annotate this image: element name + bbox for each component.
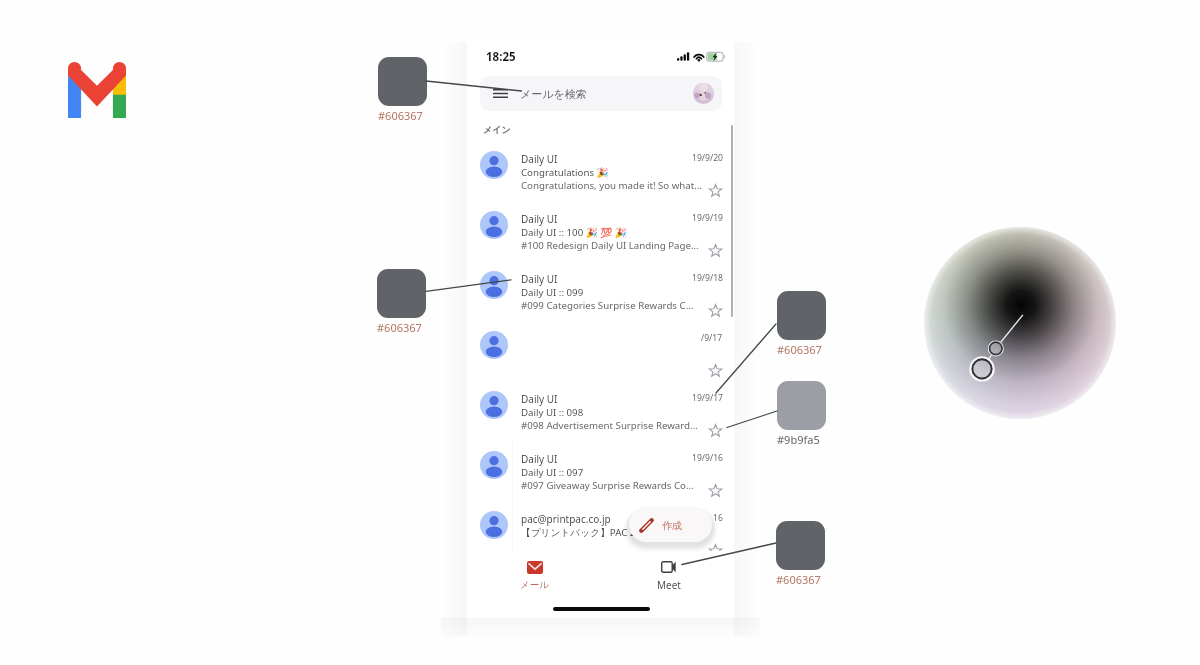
- staticText: #099 Categories Surprise Rewards C...: [521, 299, 694, 312]
- button[interactable]: Star: [709, 364, 722, 377]
- button[interactable]: 作成: [629, 507, 712, 542]
- staticText: 18:25: [486, 49, 516, 65]
- staticText: #606367: [776, 572, 821, 587]
- button[interactable]: Star: [709, 244, 722, 257]
- button[interactable]: Star: [709, 544, 722, 557]
- staticText: メールを検索: [520, 87, 587, 101]
- staticText: 19/9/17: [692, 392, 723, 403]
- staticText: #097 Giveaway Surprise Rewards Co...: [521, 479, 694, 492]
- staticText: Daily UI: [521, 272, 558, 286]
- staticText: 19/9/16: [692, 452, 723, 463]
- button[interactable]: Star: [709, 304, 722, 317]
- staticText: メイン: [483, 124, 511, 135]
- button[interactable]: Daily UI: [467, 386, 734, 446]
- staticText: Daily UI: [521, 212, 558, 226]
- button[interactable]: メール: [494, 561, 575, 603]
- staticText: Daily UI :: 098: [521, 406, 584, 419]
- button[interactable]: Account: [693, 83, 714, 104]
- staticText: #098 Advertisement Surprise Reward...: [521, 419, 698, 432]
- button[interactable]: Daily UI: [467, 446, 734, 506]
- staticText: /9/17: [701, 332, 723, 343]
- staticText: Congratulations, you made it! So what...: [521, 179, 703, 192]
- staticText: pac@printpac.co.jp: [521, 512, 611, 526]
- button[interactable]: Daily UI: [467, 146, 734, 206]
- button[interactable]: Open navigation menu: [493, 89, 508, 98]
- staticText: Daily UI: [521, 392, 558, 406]
- staticText: 16: [713, 512, 723, 523]
- staticText: 19/9/19: [692, 212, 723, 223]
- staticText: 19/9/18: [692, 272, 723, 283]
- staticText: 【プリントパック】PAC 20: [521, 526, 641, 539]
- button[interactable]: Daily UI: [467, 206, 734, 266]
- button[interactable]: /9/17: [467, 326, 734, 386]
- staticText: Daily UI: [521, 152, 558, 166]
- staticText: Meet: [657, 578, 681, 592]
- staticText: #100 Redesign Daily UI Landing Page...: [521, 239, 699, 252]
- button[interactable]: Star: [709, 424, 722, 437]
- staticText: Daily UI :: 099: [521, 286, 584, 299]
- staticText: #9b9fa5: [777, 432, 820, 447]
- staticText: Daily UI :: 100 🎉 💯 🎉: [521, 226, 627, 239]
- button[interactable]: Star: [709, 184, 722, 197]
- button[interactable]: Star: [709, 484, 722, 497]
- staticText: 19/9/20: [692, 152, 723, 163]
- button[interactable]: Open navigation menu: [480, 76, 722, 111]
- button[interactable]: pac@printpac.co.jp: [467, 506, 734, 566]
- staticText: Daily UI :: 097: [521, 466, 584, 479]
- staticText: #606367: [777, 342, 822, 357]
- staticText: #606367: [377, 320, 422, 335]
- button[interactable]: Meet: [628, 561, 709, 603]
- staticText: #606367: [378, 108, 423, 123]
- staticText: Daily UI: [521, 452, 558, 466]
- staticText: 作成: [662, 519, 682, 532]
- staticText: メール: [520, 579, 549, 591]
- staticText: Congratulations 🎉: [521, 166, 609, 179]
- button[interactable]: Daily UI: [467, 266, 734, 326]
